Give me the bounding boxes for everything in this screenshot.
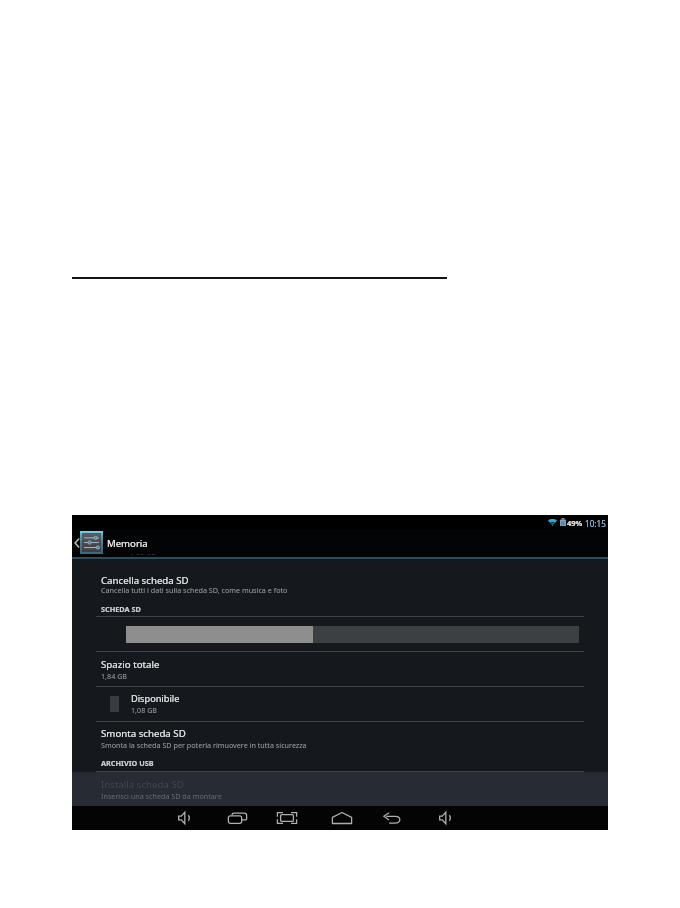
button[interactable]: Disponibile [96,687,584,721]
staticText: Smonta scheda SD [101,727,186,740]
staticText: Inserisci una scheda SD da montare [101,791,222,801]
staticText: Memoria [107,537,148,550]
staticText: Spazio totale [101,658,160,671]
staticText: 1,08 GB [131,705,158,715]
staticText: ARCHIVIO USB [101,758,154,768]
staticText: Installa scheda SD [101,778,184,791]
button[interactable]: Volume down [166,806,200,830]
staticText: SCHEDA SD [101,604,141,614]
button[interactable]: Recent apps [220,806,254,830]
button[interactable]: Home [325,806,359,830]
staticText: 1,84 GB [101,671,128,681]
button[interactable]: Back [72,529,608,557]
staticText: 1,08 GB [130,554,157,555]
button[interactable]: Cancella scheda SD [96,568,584,600]
button[interactable]: Installa scheda SD [96,772,584,804]
button[interactable]: Smonta scheda SD [96,721,584,753]
button[interactable]: Volume up [427,806,461,830]
other: Back [74,539,79,547]
button[interactable]: Screenshot [270,806,304,830]
button[interactable]: Spazio totale [96,652,584,684]
staticText: 10:15 [585,518,606,529]
staticText: Cancella scheda SD [101,574,189,587]
staticText: 49% [567,518,583,528]
staticText: Disponibile [131,692,180,705]
staticText: Cancella tutti i dati sulla scheda SD, c… [101,585,288,595]
button[interactable]: Back [375,806,409,830]
staticText: Smonta la scheda SD per poterla rimuover… [101,740,307,750]
